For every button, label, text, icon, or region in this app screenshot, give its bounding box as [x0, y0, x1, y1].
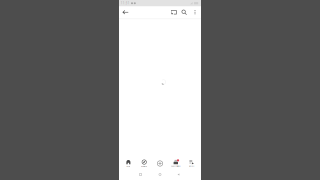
button[interactable]: Recent apps: [136, 169, 144, 180]
button[interactable]: More options: [191, 6, 198, 18]
staticText: Explore: [141, 166, 147, 167]
staticText: Subscriptions: [171, 165, 181, 167]
button[interactable]: Cast to device: [169, 6, 179, 18]
button[interactable]: Explore: [136, 158, 152, 169]
button[interactable]: Create: [152, 158, 168, 169]
button[interactable]: Back: [119, 6, 132, 18]
button[interactable]: Search: [179, 6, 189, 18]
button[interactable]: Home: [156, 169, 164, 180]
button[interactable]: Home: [120, 158, 136, 169]
staticText: Library: [189, 165, 195, 167]
staticText: Home: [126, 165, 130, 167]
staticText: 11:31: [121, 1, 130, 5]
button[interactable]: Library: [184, 158, 199, 169]
button[interactable]: Subscriptions: [168, 158, 184, 169]
button[interactable]: Back: [174, 169, 182, 180]
